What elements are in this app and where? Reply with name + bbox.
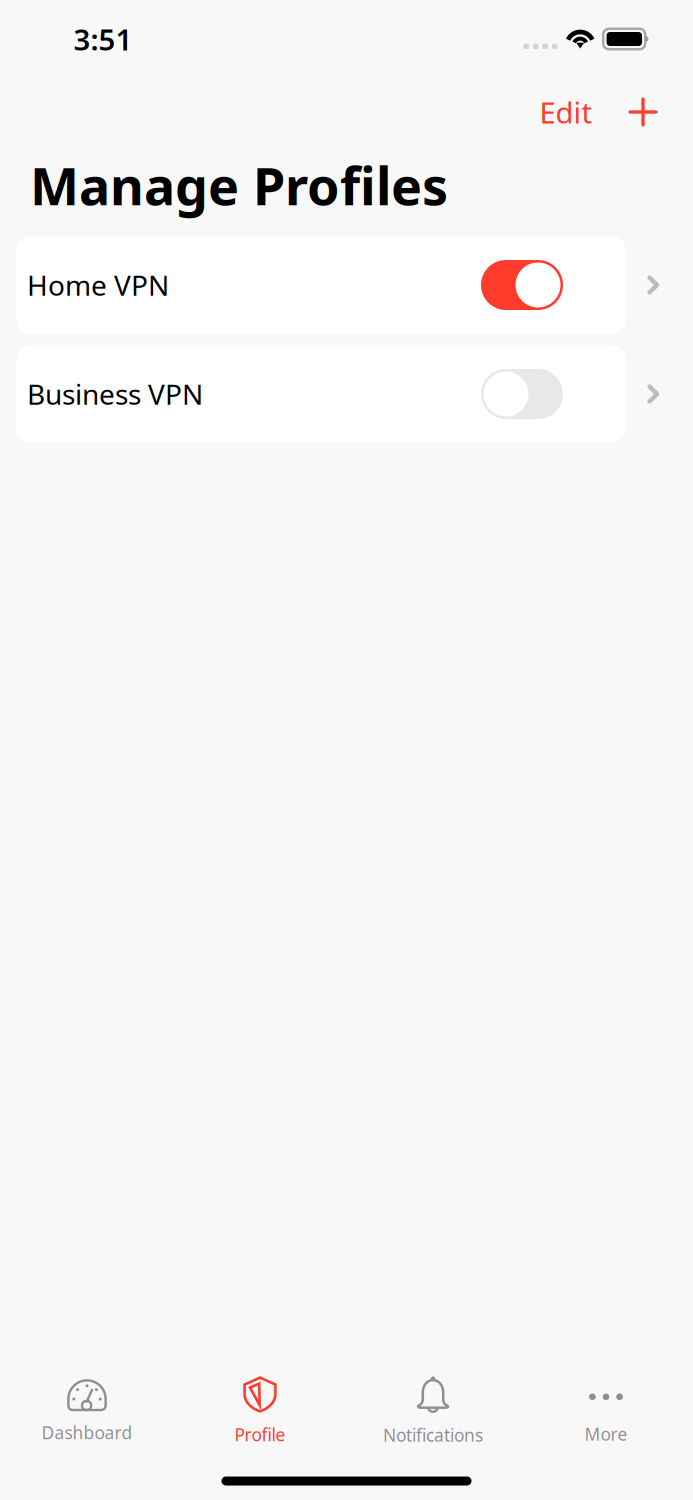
staticText: More	[584, 1422, 627, 1445]
staticText: Manage Profiles	[30, 150, 448, 220]
staticText: Notifications	[383, 1423, 483, 1446]
staticText: Business VPN	[27, 375, 203, 413]
button[interactable]: Home VPN	[0, 236, 693, 334]
button[interactable]: Add profile	[613, 84, 673, 140]
button[interactable]: Notifications	[346, 1371, 519, 1451]
staticText: Profile	[234, 1423, 285, 1446]
button[interactable]: Dashboard	[0, 1371, 173, 1451]
button[interactable]: Profile	[173, 1371, 346, 1451]
button[interactable]: More	[519, 1371, 692, 1451]
staticText: Edit	[539, 92, 592, 131]
button[interactable]: Business VPN	[0, 345, 693, 443]
staticText: 3:51	[73, 19, 132, 58]
staticText: Home VPN	[27, 266, 169, 304]
staticText: Dashboard	[41, 1421, 132, 1444]
button[interactable]: Edit	[526, 84, 606, 140]
